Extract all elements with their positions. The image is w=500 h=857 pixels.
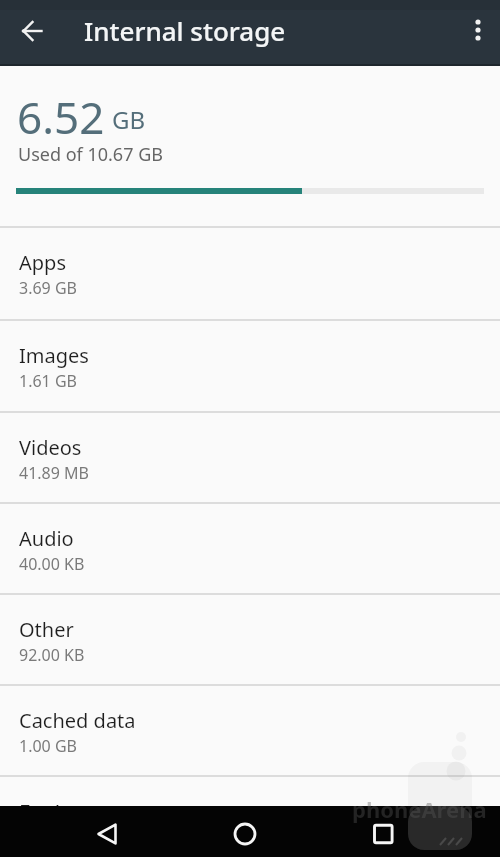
button[interactable] [333, 806, 500, 857]
button[interactable]: Explore [0, 777, 500, 806]
staticText: 6.52 [17, 87, 105, 147]
staticText: 1.00 GB [19, 735, 77, 757]
button[interactable]: Videos [0, 413, 500, 502]
button[interactable] [0, 806, 166, 857]
staticText: GB [112, 103, 146, 136]
staticText: phoneArena [352, 794, 487, 824]
button[interactable]: Audio [0, 504, 500, 593]
staticText: Videos [19, 434, 82, 461]
staticText: 40.00 KB [19, 553, 85, 575]
button[interactable]: Apps [0, 228, 500, 319]
staticText: 41.89 MB [19, 462, 89, 484]
staticText: 3.69 GB [19, 277, 77, 299]
staticText: Explore [19, 799, 93, 806]
staticText: Internal storage [84, 13, 286, 48]
staticText: Images [19, 342, 89, 369]
button[interactable] [166, 806, 333, 857]
staticText: Used of 10.67 GB [18, 142, 163, 167]
button[interactable]: Cached data [0, 686, 500, 775]
staticText: 92.00 KB [19, 644, 85, 666]
button[interactable] [0, 0, 64, 64]
staticText: Other [19, 616, 74, 643]
staticText: 1.61 GB [19, 370, 77, 392]
button[interactable]: Other [0, 595, 500, 684]
staticText: Apps [19, 249, 66, 276]
button[interactable] [456, 0, 500, 64]
staticText: Audio [19, 525, 74, 552]
button[interactable]: Images [0, 321, 500, 411]
staticText: Cached data [19, 707, 136, 734]
